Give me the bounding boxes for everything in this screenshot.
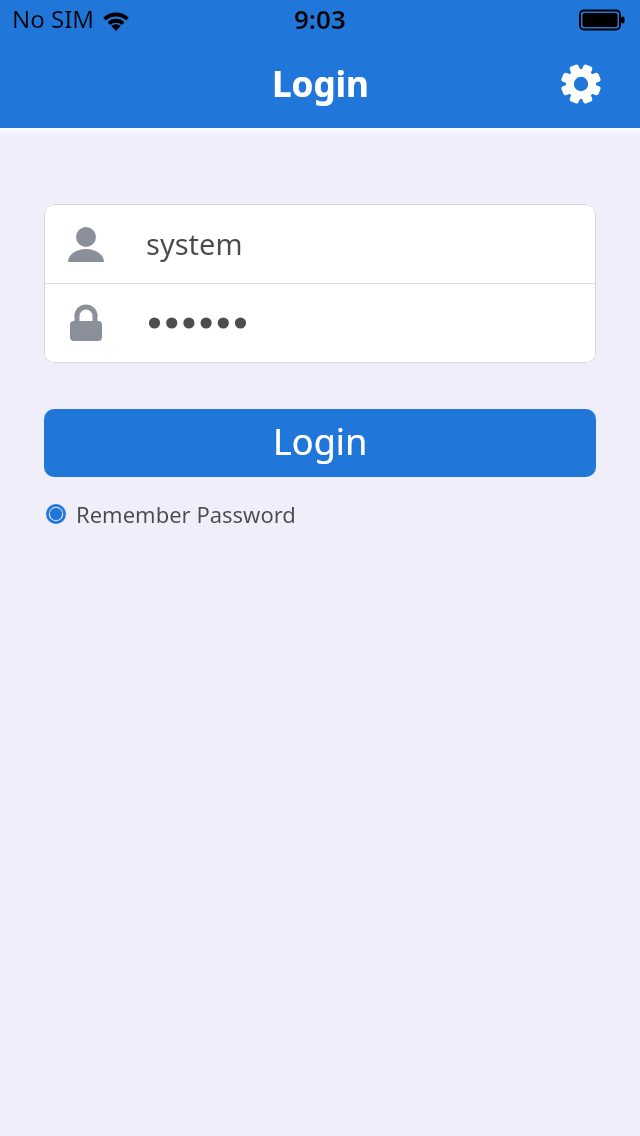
button[interactable]: Login (44, 409, 596, 477)
staticText: Remember Password (76, 499, 296, 529)
staticText: Login (273, 417, 368, 466)
button[interactable]: system (44, 204, 596, 283)
staticText: 9:03 (294, 1, 346, 36)
button[interactable] (558, 61, 604, 107)
button[interactable]: Remember Password (44, 499, 296, 529)
staticText: Login (272, 60, 369, 108)
staticText: No SIM (12, 2, 95, 35)
staticText: system (146, 224, 243, 263)
button[interactable] (44, 284, 596, 362)
